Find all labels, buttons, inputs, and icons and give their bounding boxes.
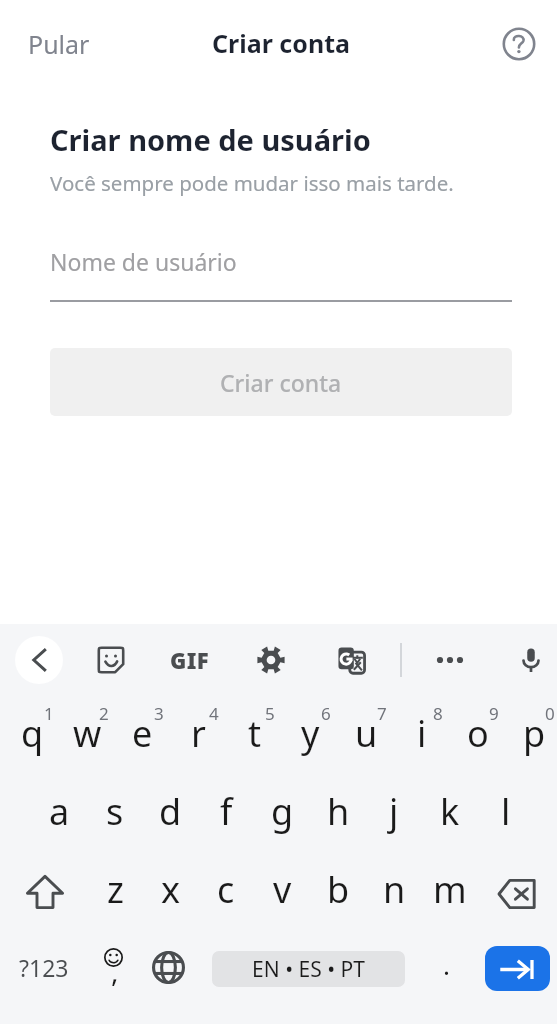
button[interactable]: d	[137, 770, 193, 848]
button[interactable]: Enter	[485, 946, 550, 991]
button[interactable]: Back	[15, 636, 63, 684]
button[interactable]: .	[418, 939, 474, 995]
staticText: 4	[209, 702, 219, 725]
staticText: a	[49, 787, 70, 836]
button[interactable]: j	[361, 770, 417, 848]
button[interactable]: Change language	[140, 939, 196, 995]
staticText: Criar conta	[220, 367, 342, 398]
button[interactable]: r	[165, 692, 221, 770]
staticText: i	[417, 709, 427, 758]
staticText: b	[327, 865, 350, 914]
button[interactable]: u	[333, 692, 389, 770]
button[interactable]: a	[27, 770, 82, 848]
staticText: f	[220, 787, 233, 836]
button[interactable]: o	[445, 692, 501, 770]
button[interactable]: w	[55, 692, 110, 770]
staticText: 5	[265, 702, 275, 725]
button[interactable]: s	[82, 770, 137, 848]
staticText: EN • ES • PT	[252, 955, 365, 984]
staticText: v	[273, 865, 292, 914]
button[interactable]: y	[277, 692, 333, 770]
button[interactable]: Voice input	[508, 637, 554, 683]
button[interactable]: Translate	[328, 637, 374, 683]
button[interactable]: n	[361, 848, 417, 926]
staticText: .	[443, 947, 450, 982]
button[interactable]: Pular	[16, 17, 102, 71]
staticText: ,	[111, 952, 119, 990]
staticText: Criar conta	[212, 26, 350, 60]
staticText: 0	[545, 702, 555, 725]
button[interactable]: Criar conta	[50, 348, 512, 416]
staticText: 2	[99, 702, 109, 725]
staticText: z	[107, 865, 124, 914]
staticText: Você sempre pode mudar isso mais tarde.	[50, 169, 454, 197]
staticText: c	[217, 865, 235, 914]
button[interactable]: Help	[496, 21, 542, 67]
button[interactable]: Backspace	[473, 848, 557, 926]
staticText: q	[21, 709, 44, 758]
button[interactable]: f	[193, 770, 249, 848]
button[interactable]: c	[193, 848, 249, 926]
staticText: j	[389, 787, 399, 836]
button[interactable]: v	[249, 848, 305, 926]
button[interactable]: ?123	[4, 939, 84, 995]
button[interactable]: h	[305, 770, 361, 848]
button[interactable]: g	[249, 770, 305, 848]
staticText: 7	[377, 702, 387, 725]
staticText: Criar nome de usuário	[50, 120, 371, 159]
staticText: l	[501, 787, 511, 836]
button[interactable]: x	[138, 848, 193, 926]
button[interactable]: i	[389, 692, 445, 770]
button[interactable]: t	[221, 692, 277, 770]
staticText: x	[161, 865, 181, 914]
staticText: e	[132, 709, 153, 758]
staticText: GIF	[170, 645, 210, 675]
staticText: 3	[154, 702, 164, 725]
button[interactable]: EN • ES • PT	[212, 951, 405, 987]
button[interactable]: Emoji	[86, 939, 142, 995]
button[interactable]: q	[0, 692, 55, 770]
staticText: d	[159, 787, 182, 836]
staticText: r	[191, 709, 206, 758]
staticText: 1	[44, 702, 54, 725]
staticText: Pular	[28, 27, 90, 61]
button[interactable]: z	[83, 848, 138, 926]
button[interactable]: GIF	[167, 637, 213, 683]
staticText: t	[248, 709, 261, 758]
staticText: s	[106, 787, 124, 836]
staticText: h	[327, 787, 350, 836]
staticText: y	[301, 709, 320, 758]
button[interactable]: Stickers	[88, 637, 134, 683]
staticText: ?123	[19, 952, 69, 983]
staticText: w	[73, 709, 102, 758]
button[interactable]: e	[110, 692, 165, 770]
staticText: 9	[489, 702, 499, 725]
staticText: p	[523, 709, 546, 758]
button[interactable]: l	[473, 770, 529, 848]
staticText: Nome de usuário	[50, 246, 237, 277]
button[interactable]: Shift	[0, 848, 83, 926]
staticText: 8	[433, 702, 443, 725]
button[interactable]: m	[417, 848, 473, 926]
staticText: u	[355, 709, 378, 758]
button[interactable]: b	[305, 848, 361, 926]
staticText: o	[467, 709, 489, 758]
staticText: g	[271, 787, 294, 836]
staticText: m	[433, 865, 467, 914]
button[interactable]: k	[417, 770, 473, 848]
button[interactable]: p	[501, 692, 557, 770]
staticText: k	[440, 787, 460, 836]
staticText: 6	[321, 702, 331, 725]
staticText: n	[383, 865, 406, 914]
button[interactable]: More options	[427, 637, 473, 683]
button[interactable]: Settings	[248, 637, 294, 683]
